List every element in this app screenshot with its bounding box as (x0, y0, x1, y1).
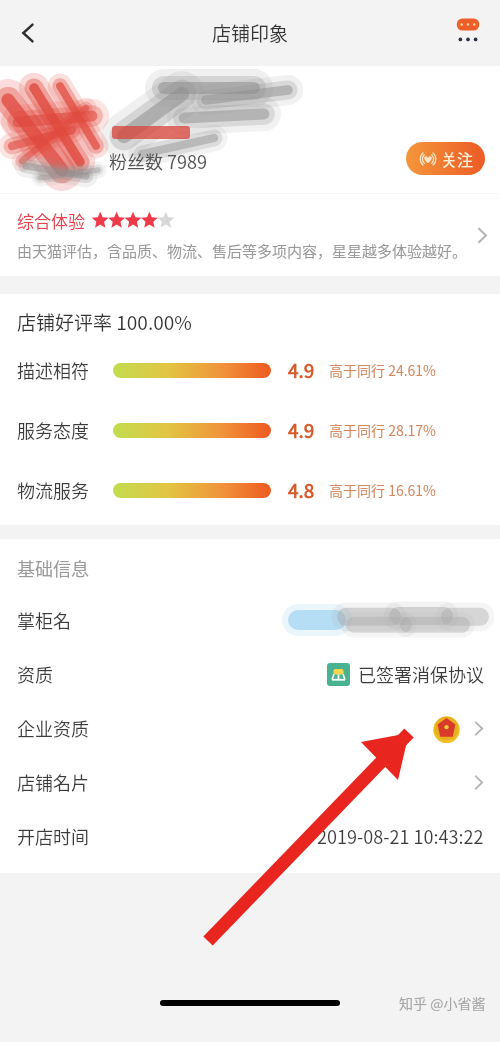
staticText: 资质 (17, 661, 53, 687)
staticText: 粉丝数 7989 (109, 148, 207, 174)
staticText: 店铺好评率 100.00% (17, 308, 192, 336)
button[interactable]: Back (6, 10, 52, 56)
button[interactable]: 掌柜名 (0, 593, 500, 647)
staticText: 4.8 (288, 476, 315, 504)
staticText: 高于同行 24.61% (329, 360, 437, 380)
staticText: 关注 (441, 147, 474, 170)
staticText: 企业资质 (17, 715, 89, 741)
staticText: 店铺名片 (17, 769, 89, 795)
staticText: 高于同行 16.61% (329, 480, 437, 500)
staticText: 2019-08-21 10:43:22 (317, 823, 484, 849)
staticText: 由天猫评估，含品质、物流、售后等多项内容，星星越多体验越好。 (17, 240, 468, 262)
staticText: 服务态度 (17, 417, 113, 443)
staticText: 店铺印象 (212, 19, 289, 47)
button[interactable]: 关注 (406, 142, 485, 175)
button[interactable]: 企业资质 (0, 701, 500, 755)
button[interactable]: 开店时间 (0, 809, 500, 863)
button[interactable]: 综合体验 (0, 194, 500, 276)
staticText: 已签署消保协议 (358, 661, 484, 687)
staticText: 高于同行 28.17% (329, 420, 437, 440)
staticText: 综合体验 (17, 208, 85, 233)
staticText: 4.9 (288, 416, 315, 444)
staticText: 掌柜名 (17, 607, 71, 633)
staticText: 物流服务 (17, 477, 113, 503)
button[interactable]: 资质 (0, 647, 500, 701)
staticText: 开店时间 (17, 823, 89, 849)
staticText: 描述相符 (17, 357, 113, 383)
staticText: 基础信息 (17, 555, 89, 581)
staticText: 4.9 (288, 356, 315, 384)
button[interactable]: More options (444, 9, 492, 57)
button[interactable]: 店铺名片 (0, 755, 500, 809)
staticText: 知乎 @小省酱 (399, 993, 486, 1013)
